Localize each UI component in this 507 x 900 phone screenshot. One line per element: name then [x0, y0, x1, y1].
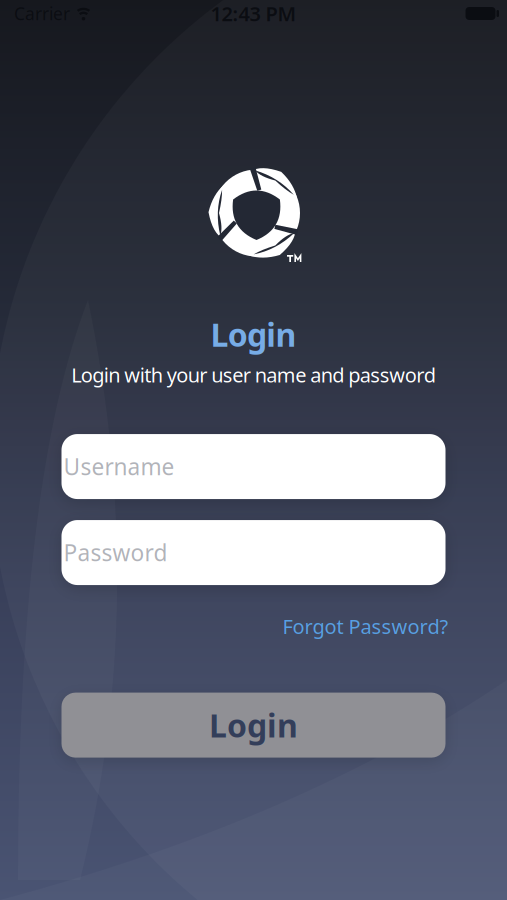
button[interactable]: Forgot Password? — [282, 613, 448, 640]
button[interactable]: Username — [61, 434, 445, 499]
staticText: Login with your user name and password — [71, 361, 436, 388]
staticText: Username — [63, 451, 174, 482]
button[interactable]: Login — [61, 693, 445, 758]
staticText: Login — [209, 704, 298, 746]
staticText: 12:43 PM — [210, 0, 296, 27]
staticText: Login — [211, 313, 296, 355]
button[interactable]: Password — [61, 520, 445, 585]
staticText: Password — [63, 537, 167, 568]
staticText: Forgot Password? — [282, 613, 448, 640]
staticText: Carrier — [14, 2, 70, 25]
